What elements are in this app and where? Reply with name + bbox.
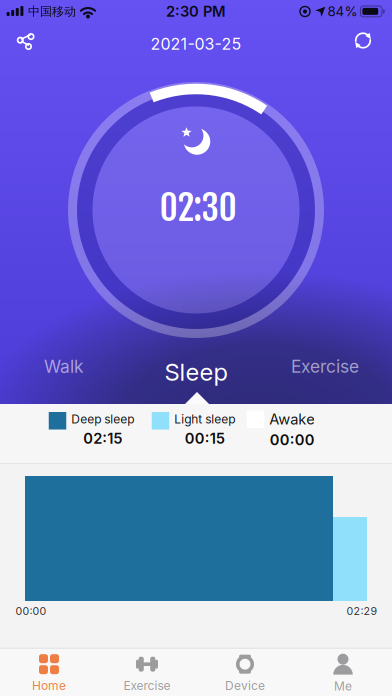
button[interactable]: Me <box>294 650 392 696</box>
button[interactable]: Home <box>0 650 98 696</box>
button[interactable]: Sleep <box>141 351 251 393</box>
button[interactable]: Share <box>15 28 41 52</box>
staticText: Exercise <box>123 679 170 693</box>
staticText: 02:30 <box>159 185 236 230</box>
staticText: Light sleep <box>174 412 235 426</box>
button[interactable]: Exercise <box>98 650 196 696</box>
staticText: Walk <box>44 356 84 377</box>
staticText: 00:15 <box>185 430 225 447</box>
staticText: 中国移动 <box>28 4 76 19</box>
staticText: Deep sleep <box>71 412 134 426</box>
button[interactable]: Exercise <box>270 346 380 386</box>
staticText: Me <box>334 679 352 693</box>
staticText: 2:30 PM <box>166 3 226 20</box>
staticText: Exercise <box>291 356 359 377</box>
button[interactable]: Walk <box>14 346 114 386</box>
button[interactable]: Refresh <box>353 30 373 50</box>
button[interactable]: Device <box>196 650 294 696</box>
staticText: 84% <box>327 4 357 19</box>
staticText: 00:00 <box>270 431 315 448</box>
staticText: Sleep <box>164 358 227 386</box>
staticText: 00:00 <box>15 605 46 617</box>
staticText: 02:15 <box>83 430 122 447</box>
staticText: Home <box>32 679 66 693</box>
staticText: Awake <box>269 410 315 428</box>
staticText: 02:29 <box>346 605 377 617</box>
staticText: 2021-03-25 <box>150 35 241 53</box>
staticText: Device <box>225 679 265 693</box>
